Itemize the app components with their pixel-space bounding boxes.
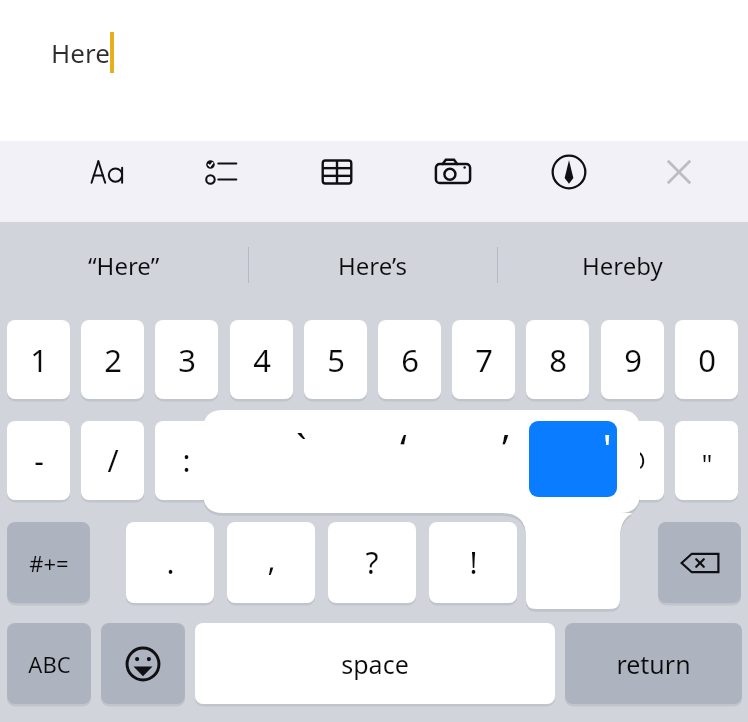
- staticText: @: [619, 440, 646, 481]
- button[interactable]: Backspace: [658, 522, 741, 603]
- button[interactable]: 1: [7, 320, 70, 399]
- staticText: 2: [104, 339, 122, 381]
- staticText: 7: [475, 339, 493, 381]
- staticText: ’: [502, 421, 509, 473]
- staticText: Hereby: [582, 249, 663, 282]
- button[interactable]: #+=: [7, 522, 90, 603]
- staticText: ABC: [28, 649, 71, 679]
- button[interactable]: ?: [328, 522, 416, 603]
- button[interactable]: 8: [526, 320, 589, 399]
- button[interactable]: 7: [452, 320, 515, 399]
- staticText: 1: [30, 339, 48, 381]
- button[interactable]: “Here”: [0, 222, 248, 308]
- button[interactable]: 2: [81, 320, 144, 399]
- button[interactable]: Close keyboard: [648, 141, 710, 203]
- button[interactable]: ,: [227, 522, 315, 603]
- staticText: Here: [51, 35, 110, 70]
- button[interactable]: !: [429, 522, 517, 603]
- staticText: .: [166, 542, 175, 583]
- staticText: 5: [327, 339, 345, 381]
- button[interactable]: return: [565, 623, 742, 704]
- button[interactable]: Insert table: [306, 141, 368, 203]
- button[interactable]: :: [155, 421, 218, 500]
- staticText: 9: [624, 339, 642, 381]
- button[interactable]: /: [81, 421, 144, 500]
- button[interactable]: ’: [461, 421, 549, 497]
- staticText: #+=: [29, 548, 69, 578]
- staticText: ?: [365, 542, 379, 583]
- button[interactable]: Here’s: [249, 222, 497, 308]
- button[interactable]: `: [257, 421, 345, 497]
- staticText: ': [603, 421, 612, 473]
- button[interactable]: space: [195, 623, 555, 704]
- button[interactable]: 3: [155, 320, 218, 399]
- staticText: 0: [698, 339, 716, 381]
- button[interactable]: ): [378, 421, 441, 500]
- button[interactable]: Hereby: [498, 222, 746, 308]
- staticText: space: [341, 647, 409, 681]
- staticText: -: [34, 440, 44, 481]
- button[interactable]: ": [675, 421, 738, 500]
- button[interactable]: ‘: [359, 421, 447, 497]
- staticText: ‘: [400, 421, 407, 473]
- staticText: `: [296, 421, 307, 473]
- staticText: ,: [267, 539, 276, 580]
- button[interactable]: 4: [230, 320, 293, 399]
- button[interactable]: &: [526, 421, 589, 500]
- button[interactable]: Text formatting: [76, 141, 138, 203]
- staticText: Here’s: [338, 249, 408, 282]
- button[interactable]: (: [304, 421, 367, 500]
- staticText: /: [107, 440, 119, 481]
- staticText: :: [182, 440, 191, 481]
- button[interactable]: -: [7, 421, 70, 500]
- staticText: 8: [549, 339, 567, 381]
- staticText: !: [469, 542, 478, 583]
- button[interactable]: Checklist: [190, 141, 252, 203]
- staticText: ": [701, 446, 713, 483]
- button[interactable]: ABC: [7, 623, 91, 704]
- button[interactable]: Camera: [422, 141, 484, 203]
- button[interactable]: 6: [378, 320, 441, 399]
- staticText: 4: [253, 339, 271, 381]
- button[interactable]: 9: [601, 320, 664, 399]
- button[interactable]: Emoji keyboard: [101, 623, 185, 704]
- staticText: 3: [178, 339, 196, 381]
- button[interactable]: 5: [304, 320, 367, 399]
- button[interactable]: 0: [675, 320, 738, 399]
- staticText: return: [616, 647, 691, 681]
- button[interactable]: Markup: [538, 141, 600, 203]
- button[interactable]: .: [126, 522, 214, 603]
- button[interactable]: $: [452, 421, 515, 500]
- staticText: “Here”: [88, 249, 160, 282]
- button[interactable]: ': [563, 421, 651, 497]
- button[interactable]: @: [601, 421, 664, 500]
- staticText: 6: [401, 339, 419, 381]
